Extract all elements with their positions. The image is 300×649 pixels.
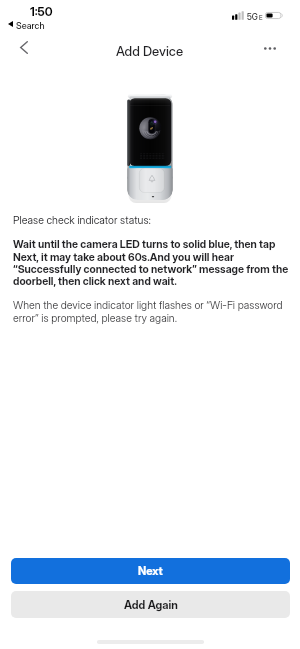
button[interactable]: Back [10,32,38,62]
staticText: 5G [247,12,258,22]
staticText: 1:50 [30,4,53,19]
staticText: Next [138,564,163,578]
button[interactable]: Add Again [11,591,290,618]
staticText: Wait until the camera LED turns to solid… [13,238,292,287]
staticText: Please check indicator status: [13,214,151,227]
staticText: Add Device [116,43,184,59]
button[interactable]: Next [11,558,290,584]
staticText: Search [16,20,45,31]
staticText: Add Again [124,598,178,612]
staticText: When the device indicator light flashes … [13,299,292,324]
staticText: E [259,14,263,21]
button[interactable]: More options [255,32,285,62]
